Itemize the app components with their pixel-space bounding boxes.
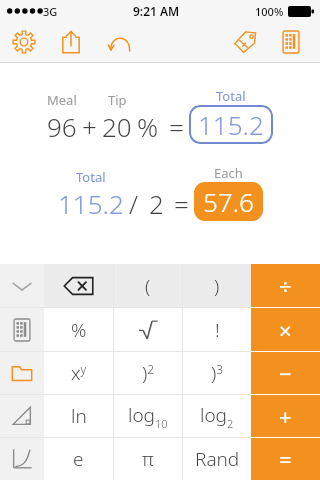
- staticText: ln: [71, 403, 87, 429]
- staticText: log2: [200, 402, 234, 431]
- button[interactable]: −: [251, 352, 320, 394]
- staticText: /: [129, 186, 139, 221]
- button[interactable]: !: [183, 308, 251, 351]
- staticText: Tip: [108, 91, 127, 109]
- button[interactable]: ): [183, 264, 251, 307]
- staticText: 100%: [255, 4, 284, 19]
- staticText: =: [174, 186, 189, 221]
- button[interactable]: +: [251, 395, 320, 437]
- button[interactable]: Graph: [0, 438, 44, 480]
- button[interactable]: Geometry: [0, 395, 44, 437]
- staticText: =: [279, 444, 292, 474]
- button[interactable]: Share: [48, 22, 94, 62]
- button[interactable]: Keypad: [0, 308, 44, 351]
- button[interactable]: ÷: [251, 264, 320, 307]
- staticText: )2: [142, 360, 155, 386]
- staticText: 2: [149, 186, 164, 221]
- button[interactable]: Files: [0, 352, 44, 394]
- button[interactable]: log2: [183, 395, 251, 437]
- staticText: 20: [102, 109, 132, 144]
- staticText: +: [279, 401, 292, 431]
- staticText: !: [215, 317, 220, 343]
- staticText: Total: [76, 168, 106, 186]
- staticText: 115.2: [198, 107, 264, 142]
- button[interactable]: Collapse keyboard: [0, 264, 44, 307]
- button[interactable]: Rand: [183, 438, 251, 480]
- button[interactable]: e: [44, 438, 113, 480]
- button[interactable]: )2: [114, 352, 182, 394]
- staticText: =: [169, 109, 184, 144]
- button[interactable]: log10: [114, 395, 182, 437]
- staticText: %: [71, 317, 87, 343]
- button[interactable]: (: [114, 264, 182, 307]
- staticText: 9:21 AM: [133, 3, 180, 19]
- button[interactable]: ×: [251, 308, 320, 351]
- staticText: +: [82, 109, 97, 144]
- button[interactable]: =: [251, 438, 320, 480]
- staticText: ×: [279, 315, 292, 345]
- button[interactable]: 115.2: [189, 105, 273, 144]
- staticText: −: [279, 358, 292, 388]
- staticText: 57.6: [203, 184, 254, 219]
- button[interactable]: xy: [44, 352, 113, 394]
- staticText: )3: [211, 360, 224, 386]
- staticText: Total: [216, 87, 246, 105]
- button[interactable]: ln: [44, 395, 113, 437]
- staticText: ÷: [279, 271, 292, 301]
- staticText: 96: [47, 109, 77, 144]
- button[interactable]: Undo: [94, 22, 146, 62]
- button[interactable]: %: [44, 308, 113, 351]
- button[interactable]: π: [114, 438, 182, 480]
- staticText: xy: [71, 360, 87, 386]
- staticText: Each: [214, 164, 243, 182]
- staticText: 3G: [43, 4, 58, 19]
- button[interactable]: Square root: [114, 308, 182, 351]
- button[interactable]: Tags: [222, 22, 268, 62]
- staticText: 115.2: [58, 186, 124, 221]
- staticText: Rand: [195, 446, 240, 472]
- button[interactable]: )3: [183, 352, 251, 394]
- button[interactable]: Keypad: [268, 22, 314, 62]
- staticText: log10: [128, 402, 168, 431]
- staticText: e: [73, 446, 84, 472]
- staticText: π: [142, 446, 154, 472]
- button[interactable]: 57.6: [194, 182, 263, 221]
- staticText: %: [137, 109, 159, 144]
- staticText: Meal: [47, 91, 77, 109]
- staticText: (: [145, 273, 151, 299]
- staticText: ): [214, 273, 220, 299]
- button[interactable]: Delete: [44, 264, 113, 307]
- button[interactable]: Settings: [0, 22, 48, 62]
